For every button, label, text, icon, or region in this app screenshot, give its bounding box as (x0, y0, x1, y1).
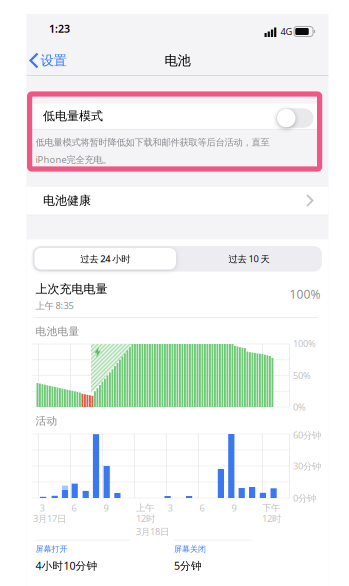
staticText: 3月17日 (33, 512, 66, 525)
button[interactable]: 电池健康 (26, 186, 328, 215)
staticText: iPhone完全充电。 (35, 153, 111, 166)
staticText: 100% (293, 337, 316, 350)
staticText: 3月18日 (136, 525, 169, 538)
staticText: 0% (293, 401, 306, 413)
staticText: 上次充电电量 (35, 282, 107, 296)
staticText: 电池 (164, 52, 190, 69)
staticText: 过去 10 天 (228, 253, 269, 265)
staticText: 低电量模式将暂时降低如下载和邮件获取等后台活动，直至 (35, 137, 269, 148)
staticText: 12时 (136, 512, 155, 525)
staticText: 9 (103, 502, 108, 514)
staticText: 12时 (262, 512, 281, 525)
staticText: 过去 24 小时 (80, 253, 130, 265)
staticText: 设置 (40, 52, 66, 69)
staticText: 3 (167, 502, 172, 514)
button[interactable]: 过去10天 (0, 0, 349, 586)
staticText: 屏幕打开 (35, 544, 67, 554)
staticText: 50% (293, 369, 311, 382)
staticText: 电池健康 (43, 193, 91, 208)
staticText: 1:23 (49, 21, 70, 36)
button[interactable]: 返回设置 (30, 47, 82, 73)
staticText: 电池电量 (35, 325, 79, 338)
staticText: 活动 (35, 414, 57, 427)
staticText: 上午 8:35 (35, 299, 73, 312)
staticText: 下午 (262, 502, 280, 514)
staticText: 5分钟 (174, 558, 202, 573)
button[interactable]: 低电量模式 (29, 103, 320, 129)
staticText: 低电量模式 (43, 109, 103, 123)
staticText: 6 (199, 502, 204, 514)
staticText: 6 (71, 502, 76, 514)
staticText: 30分钟 (293, 460, 321, 472)
staticText: 屏幕关闭 (174, 544, 206, 554)
staticText: 0分钟 (293, 492, 316, 504)
staticText: 9 (231, 502, 236, 514)
staticText: 上午 (136, 502, 154, 514)
button[interactable]: 过去 24 小时 (0, 0, 349, 586)
staticText: 100% (289, 286, 320, 302)
staticText: 60分钟 (293, 429, 321, 441)
staticText: 3 (39, 502, 44, 514)
staticText: 4小时10分钟 (35, 558, 97, 573)
staticText: 4G (280, 25, 292, 38)
